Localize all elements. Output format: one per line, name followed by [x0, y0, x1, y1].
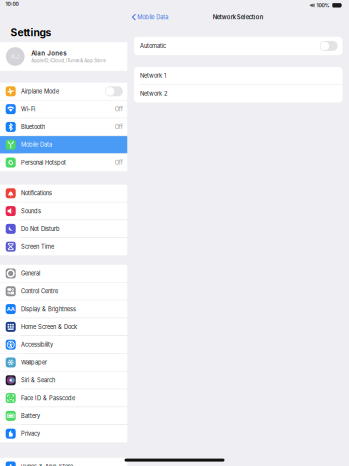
button[interactable]: Accessibility — [0, 336, 127, 353]
button[interactable]: iTunes & App Store — [0, 458, 127, 466]
staticText: Notifications — [21, 190, 52, 197]
button[interactable]: AJ — [0, 42, 127, 71]
button[interactable]: Mobile Data — [127, 12, 168, 23]
staticText: Home Screen & Dock — [21, 323, 77, 330]
staticText: Airplane Mode — [21, 88, 59, 95]
button[interactable]: Privacy — [0, 425, 127, 442]
staticText: Wi-Fi — [21, 106, 35, 113]
staticText: Screen Time — [21, 243, 54, 250]
staticText: Sounds — [21, 208, 41, 214]
staticText: Do Not Disturb — [21, 225, 60, 232]
button[interactable]: Control Centre — [0, 283, 127, 300]
button[interactable]: Wi-Fi — [0, 100, 127, 118]
staticText: Display & Brightness — [21, 306, 76, 312]
button[interactable]: Wallpaper — [0, 354, 127, 371]
staticText: Off — [115, 106, 123, 113]
button[interactable]: Screen Time — [0, 238, 127, 255]
staticText: Control Centre — [21, 288, 58, 295]
staticText: Off — [115, 123, 123, 130]
button[interactable]: Face ID & Passcode — [0, 389, 127, 407]
button[interactable]: Network 2 — [134, 85, 342, 102]
staticText: Automatic — [140, 42, 166, 49]
staticText: Apple ID, iCloud, iTunes & App Store — [31, 58, 105, 63]
staticText: Network Selection — [213, 14, 264, 21]
staticText: 10:00 — [6, 1, 19, 7]
staticText: Settings — [10, 26, 51, 39]
button[interactable]: Battery — [0, 407, 127, 424]
staticText: Mobile Data — [21, 141, 52, 148]
button[interactable]: AA — [0, 300, 127, 318]
staticText: AA — [7, 306, 15, 312]
button[interactable]: Do Not Disturb — [0, 220, 127, 237]
staticText: Network 1 — [140, 72, 166, 79]
staticText: Battery — [21, 412, 40, 419]
button[interactable]: Mobile Data — [0, 136, 127, 153]
staticText: AJ — [11, 52, 20, 61]
staticText: Accessibility — [21, 341, 53, 348]
button[interactable]: Sounds — [0, 202, 127, 220]
button[interactable]: Personal Hotspot — [0, 154, 127, 171]
staticText: Bluetooth — [21, 123, 45, 130]
staticText: Off — [115, 159, 123, 166]
button[interactable]: Bluetooth — [0, 118, 127, 136]
staticText: Network 2 — [140, 90, 167, 97]
button[interactable]: Siri & Search — [0, 372, 127, 389]
staticText: Face ID & Passcode — [21, 395, 75, 401]
staticText: 100% — [317, 2, 330, 8]
staticText: Alan Jones — [31, 50, 66, 57]
staticText: Privacy — [21, 430, 40, 437]
button[interactable]: Automatic — [134, 37, 342, 55]
staticText: Wallpaper — [21, 359, 47, 366]
staticText: Siri & Search — [21, 377, 55, 384]
staticText: General — [21, 270, 40, 277]
staticText: Mobile Data — [137, 14, 168, 21]
staticText: iTunes & App Store — [21, 463, 73, 466]
staticText: Personal Hotspot — [21, 159, 66, 166]
button[interactable]: General — [0, 265, 127, 282]
button[interactable]: Notifications — [0, 185, 127, 202]
button[interactable]: Home Screen & Dock — [0, 318, 127, 335]
button[interactable]: Network 1 — [134, 67, 342, 84]
button[interactable]: Airplane Mode — [0, 83, 127, 100]
